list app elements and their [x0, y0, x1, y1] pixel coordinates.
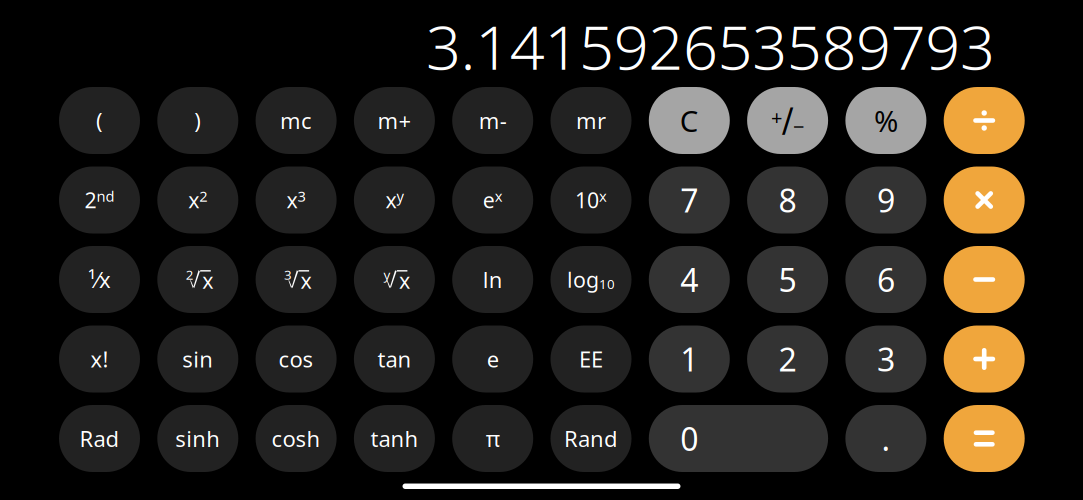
- button[interactable]: π: [452, 405, 533, 472]
- button[interactable]: 7: [649, 166, 730, 233]
- button[interactable]: Rad: [59, 405, 140, 472]
- staticText: x: [399, 266, 410, 295]
- staticText: ¹⁄x: [88, 264, 111, 294]
- staticText: 8: [779, 178, 797, 222]
- staticText: π: [486, 423, 500, 453]
- staticText: mc: [280, 105, 312, 135]
- staticText: cosh: [272, 423, 321, 453]
- staticText: .: [881, 417, 890, 460]
- staticText: 9: [877, 178, 895, 222]
- button[interactable]: Divide: [944, 87, 1025, 154]
- staticText: cos: [279, 344, 314, 374]
- button[interactable]: 3: [845, 325, 926, 392]
- button[interactable]: 2: [157, 246, 238, 313]
- staticText: x2: [188, 186, 207, 214]
- staticText: 4: [680, 258, 698, 301]
- button[interactable]: 4: [649, 246, 730, 313]
- button[interactable]: m-: [452, 87, 533, 154]
- button[interactable]: ¹⁄x: [59, 246, 140, 313]
- staticText: 10x: [575, 186, 607, 214]
- staticText: Rand: [564, 423, 618, 453]
- button[interactable]: x3: [256, 166, 337, 233]
- staticText: EE: [579, 344, 603, 374]
- button[interactable]: cos: [256, 325, 337, 392]
- staticText: 1: [680, 337, 698, 381]
- staticText: xy: [385, 186, 403, 214]
- staticText: mr: [576, 105, 606, 135]
- staticText: x: [202, 266, 213, 295]
- button[interactable]: %: [845, 87, 926, 154]
- button[interactable]: 8: [747, 166, 828, 233]
- staticText: y: [383, 266, 390, 283]
- staticText: (: [96, 105, 103, 135]
- button[interactable]: EE: [550, 325, 631, 392]
- staticText: x!: [90, 344, 108, 374]
- button[interactable]: 10x: [550, 166, 631, 233]
- staticText: sinh: [175, 423, 220, 453]
- staticText: e: [487, 344, 499, 374]
- button[interactable]: (: [59, 87, 140, 154]
- button[interactable]: .: [845, 405, 926, 472]
- button[interactable]: xy: [354, 166, 435, 233]
- button[interactable]: tan: [354, 325, 435, 392]
- button[interactable]: 6: [845, 246, 926, 313]
- staticText: 2: [186, 266, 194, 283]
- button[interactable]: tanh: [354, 405, 435, 472]
- button[interactable]: Add: [944, 325, 1025, 392]
- staticText: 3.141592653589793: [426, 5, 995, 87]
- staticText: ln: [483, 264, 503, 294]
- button[interactable]: +∕−: [747, 87, 828, 154]
- staticText: %: [874, 100, 898, 140]
- button[interactable]: x2: [157, 166, 238, 233]
- staticText: 7: [680, 178, 698, 222]
- staticText: x3: [287, 186, 306, 214]
- button[interactable]: mc: [256, 87, 337, 154]
- button[interactable]: Multiply: [944, 166, 1025, 233]
- button[interactable]: x!: [59, 325, 140, 392]
- button[interactable]: 2: [747, 325, 828, 392]
- staticText: m-: [479, 105, 507, 135]
- button[interactable]: sinh: [157, 405, 238, 472]
- button[interactable]: mr: [550, 87, 631, 154]
- button[interactable]: Equals: [944, 405, 1025, 472]
- button[interactable]: sin: [157, 325, 238, 392]
- staticText: sin: [182, 344, 213, 374]
- button[interactable]: 3: [256, 246, 337, 313]
- button[interactable]: C: [649, 87, 730, 154]
- staticText: x: [301, 266, 312, 295]
- staticText: ): [194, 105, 201, 135]
- staticText: 3: [284, 266, 292, 283]
- staticText: +∕−: [771, 101, 804, 140]
- staticText: tan: [377, 344, 411, 374]
- staticText: 0: [680, 417, 698, 460]
- button[interactable]: m+: [354, 87, 435, 154]
- button[interactable]: e: [452, 325, 533, 392]
- button[interactable]: Subtract: [944, 246, 1025, 313]
- button[interactable]: 5: [747, 246, 828, 313]
- staticText: 2nd: [84, 186, 114, 214]
- button[interactable]: 9: [845, 166, 926, 233]
- staticText: Rad: [79, 423, 119, 453]
- staticText: 3: [877, 337, 895, 381]
- button[interactable]: y: [354, 246, 435, 313]
- button[interactable]: 2nd: [59, 166, 140, 233]
- staticText: log10: [567, 265, 615, 294]
- staticText: tanh: [370, 423, 418, 453]
- button[interactable]: ): [157, 87, 238, 154]
- staticText: ex: [483, 186, 503, 214]
- staticText: 6: [877, 258, 895, 301]
- button[interactable]: 0: [649, 405, 828, 472]
- staticText: 5: [779, 258, 797, 301]
- staticText: 2: [779, 337, 797, 381]
- button[interactable]: ex: [452, 166, 533, 233]
- button[interactable]: log10: [550, 246, 631, 313]
- staticText: m+: [377, 105, 411, 135]
- button[interactable]: cosh: [256, 405, 337, 472]
- staticText: C: [680, 100, 699, 140]
- button[interactable]: Rand: [550, 405, 631, 472]
- button[interactable]: ln: [452, 246, 533, 313]
- button[interactable]: 1: [649, 325, 730, 392]
